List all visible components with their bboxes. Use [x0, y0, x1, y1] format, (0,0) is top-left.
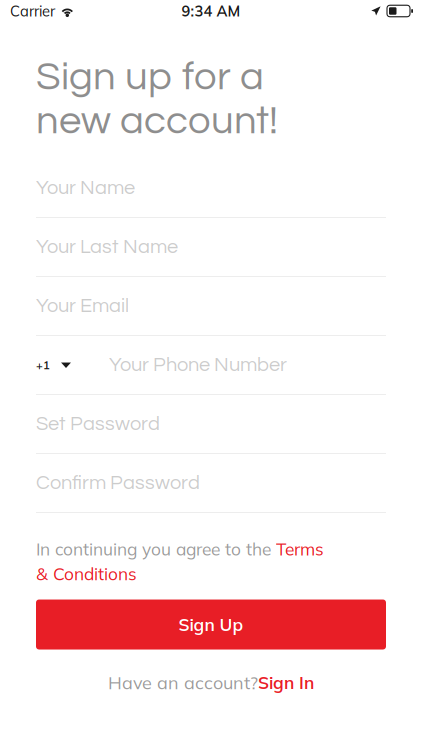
button[interactable]: Confirm Password: [36, 454, 386, 513]
staticText: 9:34 AM: [181, 2, 240, 20]
staticText: Terms: [276, 538, 324, 560]
button[interactable]: Your Phone Number: [71, 336, 386, 394]
staticText: Carrier: [10, 2, 55, 20]
staticText: Your Phone Number: [109, 355, 287, 375]
staticText: Your Last Name: [36, 237, 178, 257]
staticText: & Conditions: [36, 563, 137, 585]
button[interactable]: In continuing you agree to the: [36, 538, 386, 584]
staticText: Sign Up: [178, 614, 243, 635]
staticText: new account!: [36, 100, 278, 142]
button[interactable]: Have an account?: [108, 670, 314, 694]
button[interactable]: Set Password: [36, 395, 386, 454]
staticText: Have an account?: [108, 671, 258, 694]
staticText: In continuing you agree to the: [36, 538, 276, 560]
staticText: Your Email: [36, 296, 129, 316]
staticText: +1: [36, 358, 50, 372]
staticText: Your Name: [36, 178, 135, 198]
button[interactable]: Your Last Name: [36, 218, 386, 277]
button[interactable]: Your Name: [36, 159, 386, 218]
button[interactable]: Sign Up: [36, 599, 386, 649]
staticText: Sign In: [258, 672, 314, 693]
staticText: Set Password: [36, 414, 160, 434]
button[interactable]: Country code: [36, 336, 71, 394]
button[interactable]: Your Email: [36, 277, 386, 336]
staticText: Confirm Password: [36, 473, 200, 493]
staticText: Sign up for a: [36, 56, 264, 98]
